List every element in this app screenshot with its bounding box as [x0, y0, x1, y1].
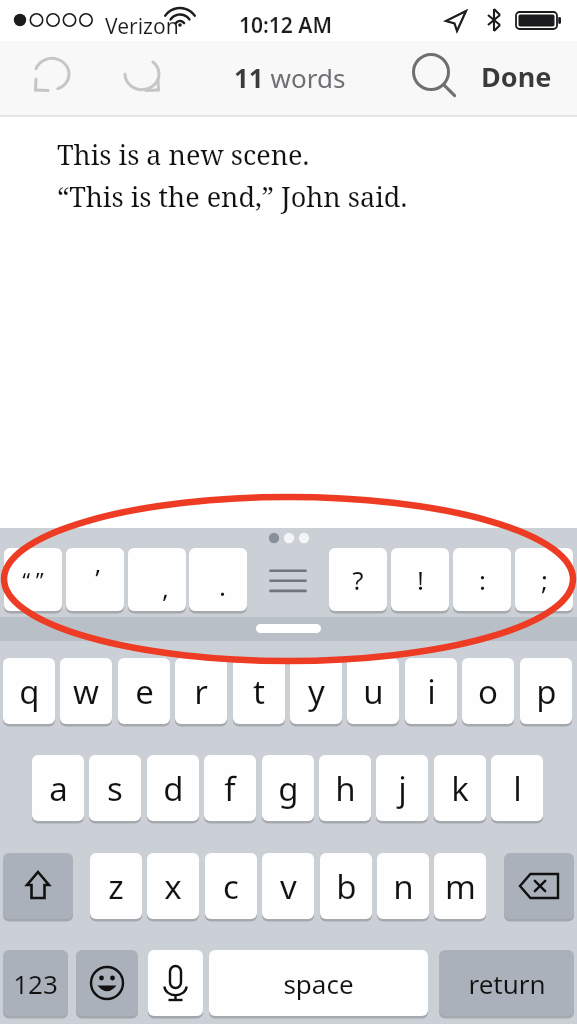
- button[interactable]: .: [189, 548, 247, 611]
- staticText: This is a new scene.: [57, 136, 310, 173]
- button[interactable]: Done: [481, 52, 567, 100]
- staticText: u: [363, 669, 384, 714]
- button[interactable]: k: [434, 755, 486, 821]
- staticText: x: [164, 864, 182, 909]
- button[interactable]: p: [520, 658, 572, 724]
- staticText: ,: [162, 570, 169, 605]
- button[interactable]: m: [434, 853, 486, 919]
- staticText: return: [468, 966, 546, 1001]
- staticText: j: [398, 766, 407, 811]
- staticText: “ ”: [22, 565, 44, 595]
- button[interactable]: Emoji: [76, 950, 138, 1016]
- button[interactable]: g: [262, 755, 314, 821]
- staticText: Done: [481, 58, 552, 95]
- button[interactable]: o: [462, 658, 514, 724]
- staticText: g: [278, 766, 299, 811]
- staticText: ;: [541, 562, 548, 597]
- button[interactable]: n: [377, 853, 429, 919]
- button[interactable]: c: [205, 853, 257, 919]
- button[interactable]: !: [391, 548, 449, 611]
- staticText: t: [253, 669, 265, 714]
- staticText: 123: [13, 966, 58, 1001]
- staticText: s: [107, 766, 123, 811]
- button[interactable]: f: [204, 755, 256, 821]
- staticText: 11 words: [234, 60, 346, 95]
- staticText: “This is the end,” John said.: [57, 178, 408, 215]
- button[interactable]: z: [90, 853, 142, 919]
- button[interactable]: i: [405, 658, 457, 724]
- button[interactable]: q: [3, 658, 55, 724]
- staticText: Verizon: [105, 12, 179, 41]
- staticText: b: [336, 864, 357, 909]
- button[interactable]: ?: [329, 548, 387, 611]
- button[interactable]: space: [209, 950, 428, 1016]
- button[interactable]: t: [233, 658, 285, 724]
- button[interactable]: j: [376, 755, 428, 821]
- staticText: m: [445, 864, 476, 909]
- staticText: ’: [95, 560, 100, 595]
- button[interactable]: s: [89, 755, 141, 821]
- staticText: q: [19, 669, 40, 714]
- button[interactable]: Shift: [3, 853, 73, 919]
- staticText: a: [49, 766, 68, 811]
- staticText: w: [73, 669, 99, 714]
- button[interactable]: Backspace: [504, 853, 574, 919]
- button[interactable]: ,: [128, 548, 186, 611]
- staticText: .: [219, 568, 226, 603]
- staticText: ?: [352, 562, 364, 597]
- button[interactable]: d: [147, 755, 199, 821]
- button[interactable]: More punctuation: [258, 548, 318, 611]
- button[interactable]: e: [118, 658, 170, 724]
- button[interactable]: u: [347, 658, 399, 724]
- button[interactable]: a: [32, 755, 84, 821]
- staticText: r: [194, 669, 208, 714]
- staticText: h: [335, 766, 356, 811]
- staticText: !: [417, 562, 424, 597]
- button[interactable]: h: [319, 755, 371, 821]
- button[interactable]: Redo: [114, 50, 172, 102]
- button[interactable]: Dictation: [148, 950, 203, 1016]
- button[interactable]: “ ”: [4, 548, 62, 611]
- staticText: l: [513, 766, 522, 811]
- staticText: space: [283, 966, 354, 1001]
- button[interactable]: ’: [66, 548, 124, 611]
- staticText: i: [427, 669, 436, 714]
- staticText: k: [451, 766, 469, 811]
- button[interactable]: y: [290, 658, 342, 724]
- button[interactable]: Search: [404, 48, 460, 104]
- staticText: n: [393, 864, 414, 909]
- staticText: d: [163, 766, 184, 811]
- button[interactable]: v: [262, 853, 314, 919]
- staticText: f: [224, 766, 236, 811]
- button[interactable]: 123: [3, 950, 68, 1016]
- button[interactable]: l: [491, 755, 543, 821]
- button[interactable]: ;: [515, 548, 573, 611]
- staticText: e: [135, 669, 154, 714]
- staticText: v: [280, 864, 297, 909]
- staticText: y: [308, 669, 325, 714]
- button[interactable]: Undo: [24, 50, 82, 102]
- button[interactable]: r: [175, 658, 227, 724]
- staticText: :: [479, 562, 486, 597]
- staticText: o: [478, 669, 498, 714]
- button[interactable]: w: [60, 658, 112, 724]
- staticText: p: [536, 669, 557, 714]
- staticText: 10:12 AM: [239, 11, 332, 40]
- button[interactable]: b: [320, 853, 372, 919]
- button[interactable]: return: [439, 950, 574, 1016]
- staticText: c: [223, 864, 239, 909]
- button[interactable]: x: [147, 853, 199, 919]
- staticText: z: [108, 864, 124, 909]
- button[interactable]: :: [453, 548, 511, 611]
